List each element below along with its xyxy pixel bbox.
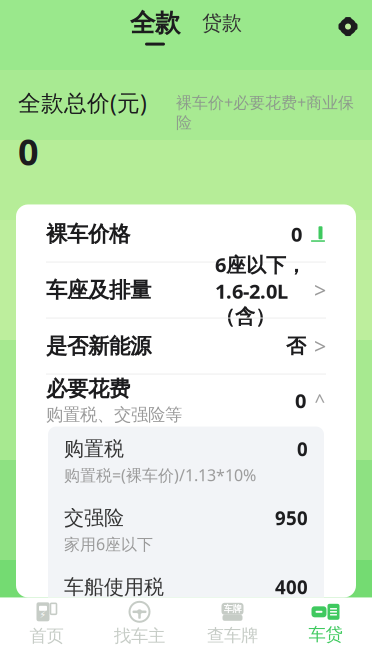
button[interactable]: 裸车价格 [16,206,356,261]
staticText: 购置税=(裸车价)/1.13*10% [64,464,256,485]
staticText: 裸车价格 [46,221,130,247]
button[interactable]: Settings [338,10,372,36]
staticText: 必要花费 [46,376,130,402]
staticText: > [314,276,326,304]
staticText: 0 [295,387,306,414]
staticText: 交强险 [64,506,124,530]
staticText: > [314,332,326,360]
staticText: 车牌 [223,603,241,615]
button[interactable]: 车牌 [186,596,279,650]
button[interactable]: 是否新能源 [16,318,356,373]
button[interactable]: 找车主 [93,595,186,650]
button[interactable]: ⚡︎ [0,595,93,650]
staticText: ^ [314,388,325,413]
staticText: 950 [275,506,308,530]
staticText: 贷款 [202,11,242,35]
staticText: 找车主 [114,625,165,647]
staticText: 首页 [29,625,63,647]
staticText: 6座以下，1.6-2.0L（含） [215,251,306,329]
staticText: 查车牌 [207,625,258,646]
staticText: 车贷 [308,624,342,645]
button[interactable]: 车座及排量 [16,262,356,317]
staticText: 全款 [130,7,180,39]
staticText: 0 [291,221,302,247]
staticText: ⚡︎ [39,609,46,620]
staticText: 全款总价(元) [18,87,147,118]
staticText: 否 [286,334,306,358]
staticText: 0 [297,436,308,461]
staticText: 400 [275,575,308,599]
staticText: 购置税、交强险等 [46,404,182,425]
staticText: 是否新能源 [46,333,151,359]
button[interactable]: 全款 [130,1,180,46]
staticText: 0 [18,128,39,175]
staticText: 车座及排量 [46,277,151,303]
button[interactable]: 贷款 [202,5,242,42]
staticText: 车船使用税 [64,575,164,599]
button[interactable]: 必要花费 [16,374,356,426]
button[interactable]: 车贷 [279,597,372,650]
staticText: 购置税 [64,437,124,461]
staticText: 家用6座以下 [64,533,153,554]
staticText: 裸车价+必要花费+商业保险 [176,91,354,132]
